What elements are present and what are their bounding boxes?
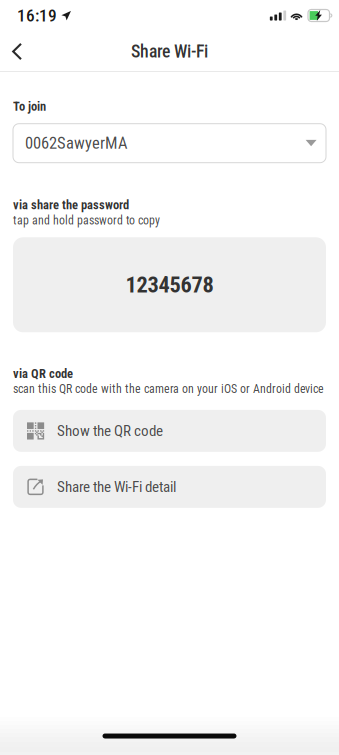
staticText: 0062SawyerMA (25, 133, 128, 153)
button[interactable]: Show the QR code (13, 410, 326, 452)
staticText: Share the Wi-Fi detail (57, 478, 176, 496)
staticText: via QR code (13, 366, 73, 381)
button[interactable]: 12345678 (13, 237, 326, 332)
staticText: Share Wi-Fi (131, 41, 208, 62)
staticText: tap and hold password to copy (13, 213, 160, 227)
staticText: 12345678 (125, 272, 213, 298)
button[interactable]: 0062SawyerMA (13, 124, 326, 163)
staticText: scan this QR code with the camera on you… (13, 382, 324, 396)
button[interactable]: Share the Wi-Fi detail (13, 466, 326, 508)
staticText: Show the QR code (57, 422, 163, 440)
staticText: via share the password (13, 198, 129, 212)
staticText: 16:19 (17, 5, 57, 26)
staticText: To join (13, 99, 46, 114)
button[interactable]: Back (0, 33, 38, 70)
